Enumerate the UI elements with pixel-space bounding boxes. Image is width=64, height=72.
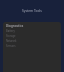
staticText: Network: [6, 39, 17, 43]
staticText: Diagnostics: [6, 24, 24, 28]
button[interactable]: Diagnostics: [3, 23, 61, 28]
button[interactable]: Battery: [3, 28, 61, 33]
button[interactable]: Storage: [3, 33, 61, 38]
staticText: Battery: [6, 29, 15, 33]
staticText: Storage: [6, 34, 16, 38]
button[interactable]: Network: [3, 38, 61, 43]
button[interactable]: Sensors: [3, 43, 61, 48]
staticText: Sensors: [6, 44, 16, 48]
staticText: System Tools: [22, 9, 42, 13]
